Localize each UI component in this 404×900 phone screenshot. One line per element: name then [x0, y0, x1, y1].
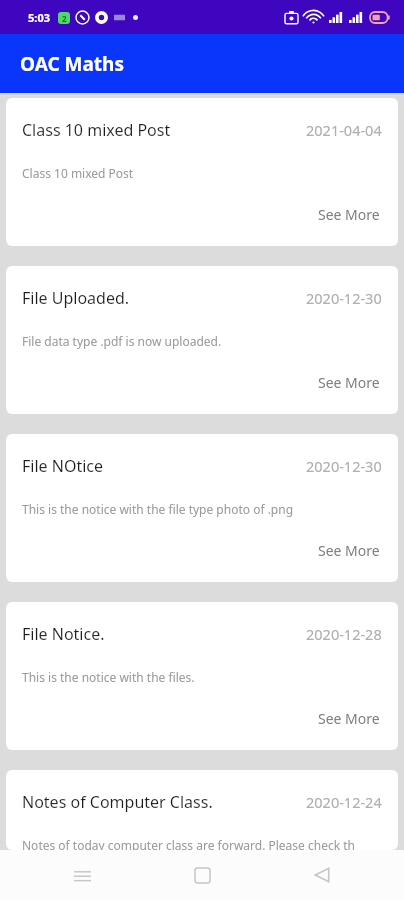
staticText: This is the notice with the files. — [22, 669, 382, 685]
button[interactable]: Notes of Computer Class. — [6, 770, 398, 850]
staticText: 2020-12-30 — [306, 288, 382, 308]
staticText: Class 10 mixed Post — [22, 165, 382, 181]
button[interactable]: File Uploaded. — [6, 266, 398, 414]
staticText: 2 — [62, 13, 67, 24]
staticText: File NOtice — [22, 455, 296, 477]
staticText: Class 10 mixed Post — [22, 119, 296, 141]
staticText: See More — [318, 205, 380, 224]
staticText: Notes of today computer class are forwar… — [22, 837, 382, 850]
staticText: 2020-12-28 — [306, 624, 382, 644]
staticText: File Notice. — [22, 623, 296, 645]
button[interactable]: Recent apps — [60, 853, 104, 897]
button[interactable]: See More — [316, 705, 382, 732]
button[interactable]: See More — [316, 537, 382, 564]
staticText: This is the notice with the file type ph… — [22, 501, 382, 517]
staticText: 2020-12-30 — [306, 456, 382, 476]
button[interactable]: Home — [180, 853, 224, 897]
button[interactable]: File Notice. — [6, 602, 398, 750]
staticText: Notes of Computer Class. — [22, 791, 296, 813]
staticText: File Uploaded. — [22, 287, 296, 309]
staticText: 5:03 — [28, 10, 50, 25]
button[interactable]: File NOtice — [6, 434, 398, 582]
staticText: File data type .pdf is now uploaded. — [22, 333, 382, 349]
staticText: See More — [318, 541, 380, 560]
staticText: 2020-12-24 — [306, 792, 382, 812]
staticText: See More — [318, 709, 380, 728]
button[interactable]: Back — [300, 853, 344, 897]
staticText: See More — [318, 373, 380, 392]
staticText: 2021-04-04 — [306, 120, 382, 140]
button[interactable]: See More — [316, 369, 382, 396]
staticText: OAC Maths — [20, 51, 124, 77]
button[interactable]: Class 10 mixed Post — [6, 98, 398, 246]
button[interactable]: See More — [316, 201, 382, 228]
